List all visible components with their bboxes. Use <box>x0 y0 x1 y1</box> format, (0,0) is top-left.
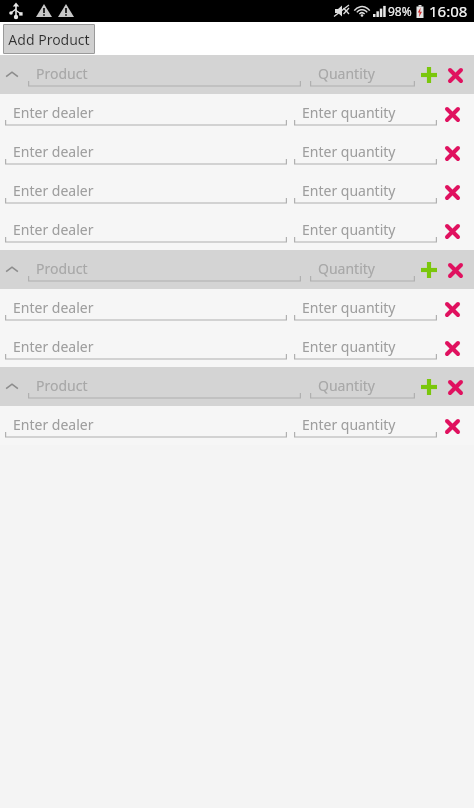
staticText: Enter dealer <box>13 415 94 434</box>
button[interactable]: Enter quantity <box>294 216 437 246</box>
button[interactable]: Remove <box>439 179 465 205</box>
staticText: 98% <box>388 3 412 19</box>
button[interactable]: Remove <box>439 140 465 166</box>
button[interactable]: Add dealer <box>416 257 442 283</box>
button[interactable]: Enter dealer <box>0 289 474 328</box>
button[interactable]: Collapse group <box>0 367 474 406</box>
button[interactable]: Enter dealer <box>5 333 287 363</box>
button[interactable]: Enter dealer <box>5 294 287 324</box>
button[interactable]: Enter dealer <box>5 138 287 168</box>
button[interactable]: Enter quantity <box>294 138 437 168</box>
button[interactable]: Remove <box>439 296 465 322</box>
staticText: 16:08 <box>429 1 468 21</box>
staticText: Enter dealer <box>13 337 94 356</box>
button[interactable]: Enter dealer <box>5 411 287 441</box>
staticText: Enter dealer <box>13 220 94 239</box>
button[interactable]: Add Product <box>3 24 95 54</box>
button[interactable]: Enter dealer <box>0 94 474 133</box>
button[interactable]: Remove <box>442 62 468 88</box>
staticText: Enter dealer <box>13 103 94 122</box>
staticText: Enter quantity <box>302 298 396 317</box>
button[interactable]: Enter dealer <box>5 99 287 129</box>
button[interactable]: Quantity <box>310 255 415 285</box>
button[interactable]: Enter quantity <box>294 177 437 207</box>
button[interactable]: Enter quantity <box>294 333 437 363</box>
button[interactable]: Remove <box>439 335 465 361</box>
staticText: Enter dealer <box>13 142 94 161</box>
button[interactable]: Product <box>28 60 301 90</box>
button[interactable]: Remove <box>442 257 468 283</box>
button[interactable]: Remove <box>439 218 465 244</box>
staticText: Quantity <box>318 376 375 395</box>
button[interactable]: Collapse group <box>0 63 24 87</box>
staticText: Quantity <box>318 64 375 83</box>
button[interactable]: Enter dealer <box>5 177 287 207</box>
button[interactable]: Enter dealer <box>0 172 474 211</box>
staticText: Enter quantity <box>302 103 396 122</box>
button[interactable]: Collapse group <box>0 375 24 399</box>
button[interactable]: Enter quantity <box>294 411 437 441</box>
staticText: Enter quantity <box>302 220 396 239</box>
button[interactable]: Add dealer <box>416 374 442 400</box>
button[interactable]: Remove <box>439 413 465 439</box>
button[interactable]: Product <box>28 255 301 285</box>
staticText: Enter quantity <box>302 181 396 200</box>
button[interactable]: Enter quantity <box>294 294 437 324</box>
button[interactable]: Collapse group <box>0 55 474 94</box>
button[interactable]: Enter dealer <box>0 406 474 445</box>
staticText: Product <box>36 376 88 395</box>
button[interactable]: Enter dealer <box>0 211 474 250</box>
button[interactable]: Enter dealer <box>0 133 474 172</box>
staticText: Enter quantity <box>302 415 396 434</box>
staticText: Enter dealer <box>13 181 94 200</box>
button[interactable]: Remove <box>442 374 468 400</box>
staticText: Product <box>36 259 88 278</box>
staticText: Product <box>36 64 88 83</box>
button[interactable]: Quantity <box>310 60 415 90</box>
button[interactable]: Quantity <box>310 372 415 402</box>
button[interactable]: Enter quantity <box>294 99 437 129</box>
button[interactable]: Collapse group <box>0 250 474 289</box>
staticText: Quantity <box>318 259 375 278</box>
staticText: Enter dealer <box>13 298 94 317</box>
button[interactable]: Enter dealer <box>5 216 287 246</box>
button[interactable]: Remove <box>439 101 465 127</box>
button[interactable]: Product <box>28 372 301 402</box>
button[interactable]: Add dealer <box>416 62 442 88</box>
button[interactable]: Enter dealer <box>0 328 474 367</box>
staticText: Enter quantity <box>302 337 396 356</box>
staticText: Add Product <box>8 30 90 49</box>
staticText: Enter quantity <box>302 142 396 161</box>
button[interactable]: Collapse group <box>0 258 24 282</box>
